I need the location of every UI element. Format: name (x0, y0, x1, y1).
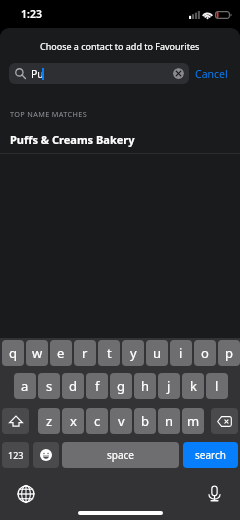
button[interactable]: Dictation (203, 482, 225, 504)
button[interactable]: d (62, 373, 84, 399)
button[interactable]: u (146, 340, 168, 366)
button[interactable]: Pu (9, 63, 189, 84)
staticText: a (21, 377, 29, 395)
button[interactable]: y (122, 340, 144, 366)
staticText: o (201, 344, 209, 362)
button[interactable]: l (206, 373, 228, 399)
button[interactable]: j (158, 373, 180, 399)
staticText: f (95, 377, 100, 395)
staticText: x (70, 412, 77, 430)
button[interactable]: Cancel (195, 63, 228, 84)
staticText: 1:23 (21, 7, 42, 21)
button[interactable]: x (62, 408, 84, 434)
staticText: 123 (8, 449, 24, 461)
button[interactable]: q (2, 340, 24, 366)
button[interactable]: f (86, 373, 108, 399)
button[interactable]: b (134, 408, 156, 434)
button[interactable]: Change keyboard (15, 483, 37, 505)
button[interactable]: t (98, 340, 120, 366)
button[interactable]: w (26, 340, 48, 366)
staticText: q (9, 344, 17, 362)
button[interactable]: g (110, 373, 132, 399)
button[interactable]: r (74, 340, 96, 366)
staticText: l (215, 377, 219, 395)
staticText: b (141, 412, 149, 430)
staticText: j (167, 377, 171, 395)
button[interactable]: Clear text (173, 68, 184, 79)
staticText: w (32, 344, 43, 362)
button[interactable]: h (134, 373, 156, 399)
staticText: v (118, 412, 125, 430)
staticText: d (69, 377, 77, 395)
button[interactable]: 123 (2, 442, 29, 468)
staticText: t (107, 344, 112, 362)
button[interactable]: i (170, 340, 192, 366)
button[interactable]: m (182, 408, 204, 434)
staticText: TOP NAME MATCHES (10, 109, 88, 119)
button[interactable]: z (38, 408, 60, 434)
button[interactable]: Puffs & Creams Bakery (0, 127, 240, 151)
staticText: u (153, 344, 162, 362)
button[interactable]: o (194, 340, 216, 366)
staticText: g (117, 377, 125, 395)
staticText: k (190, 377, 197, 395)
staticText: i (179, 344, 183, 362)
staticText: Cancel (195, 67, 228, 81)
staticText: Choose a contact to add to Favourites (40, 40, 200, 52)
staticText: s (46, 377, 53, 395)
button[interactable]: e (50, 340, 72, 366)
button[interactable]: Shift (2, 408, 29, 434)
button[interactable]: k (182, 373, 204, 399)
staticText: m (187, 412, 200, 430)
button[interactable]: search (183, 442, 238, 468)
staticText: z (46, 412, 53, 430)
staticText: h (141, 377, 150, 395)
staticText: p (225, 344, 233, 362)
button[interactable]: s (38, 373, 60, 399)
staticText: y (130, 344, 137, 362)
staticText: r (82, 344, 88, 362)
staticText: c (94, 412, 101, 430)
staticText: Puffs & Creams Bakery (10, 132, 135, 147)
button[interactable]: Backspace (211, 408, 238, 434)
button[interactable]: n (158, 408, 180, 434)
button[interactable]: a (14, 373, 36, 399)
button[interactable]: c (86, 408, 108, 434)
staticText: Pu (31, 67, 44, 81)
button[interactable]: Emoji (33, 442, 59, 468)
staticText: space (107, 448, 134, 462)
staticText: e (57, 344, 65, 362)
button[interactable]: p (218, 340, 240, 366)
staticText: n (165, 412, 174, 430)
button[interactable]: space (62, 442, 179, 468)
button[interactable]: v (110, 408, 132, 434)
staticText: search (195, 448, 226, 462)
